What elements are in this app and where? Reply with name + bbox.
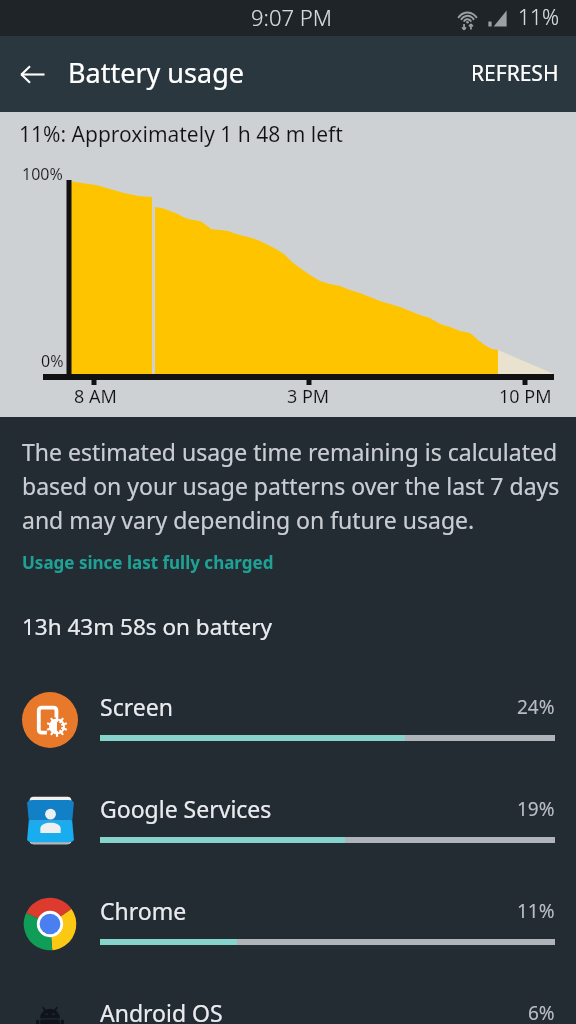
staticText: 3 PM	[287, 384, 330, 409]
staticText: 19%	[517, 796, 555, 822]
staticText: 11%: Approximately 1 h 48 m left	[19, 120, 343, 149]
button[interactable]: Google Services	[0, 767, 576, 869]
button[interactable]: Screen	[0, 665, 576, 767]
staticText: Google Services	[100, 793, 272, 824]
staticText: Usage since last fully charged	[22, 551, 274, 574]
staticText: 13h 43m 58s on battery	[22, 611, 273, 642]
staticText: Android OS	[100, 997, 223, 1024]
staticText: 0%	[41, 350, 64, 372]
button[interactable]: Usage since last fully charged	[0, 547, 290, 578]
staticText: 11%	[518, 3, 560, 32]
button[interactable]: Back	[0, 42, 64, 106]
staticText: The estimated usage time remaining is ca…	[22, 436, 560, 535]
staticText: REFRESH	[471, 59, 559, 88]
staticText: 10 PM	[499, 384, 552, 409]
staticText: 8 AM	[74, 384, 117, 409]
staticText: Battery usage	[68, 54, 244, 91]
button[interactable]: Chrome	[0, 869, 576, 971]
staticText: 100%	[22, 163, 63, 185]
button[interactable]: REFRESH	[454, 46, 576, 103]
staticText: Screen	[100, 691, 173, 722]
staticText: 11%	[517, 898, 555, 924]
staticText: Chrome	[100, 895, 187, 926]
staticText: 24%	[517, 694, 555, 720]
button[interactable]: Android OS	[0, 971, 576, 1024]
staticText: 6%	[528, 1000, 555, 1024]
staticText: 9:07 PM	[251, 2, 332, 32]
